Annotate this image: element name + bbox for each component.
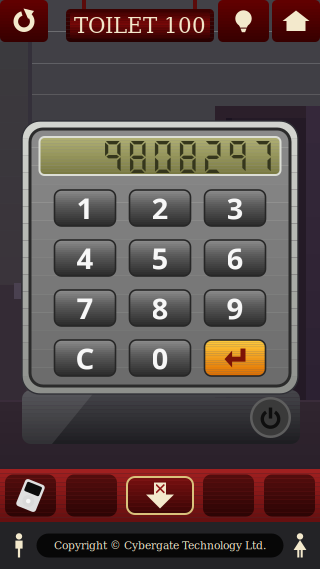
button[interactable]: Empty inventory slot — [203, 474, 254, 516]
staticText: 2 — [151, 188, 168, 227]
button[interactable]: 3 — [204, 190, 265, 226]
staticText: 9 — [226, 288, 243, 327]
button[interactable]: Empty inventory slot — [264, 474, 315, 516]
staticText: 1 — [76, 188, 93, 227]
button[interactable]: Hint — [218, 0, 269, 42]
button[interactable]: Enter — [204, 340, 265, 376]
staticText: 4 — [76, 238, 93, 277]
button[interactable]: TOILET 100 — [66, 9, 214, 42]
staticText: 6 — [226, 238, 243, 277]
button[interactable]: 5 — [129, 240, 190, 276]
button[interactable]: 7 — [54, 290, 115, 326]
staticText: 0 — [151, 338, 168, 377]
staticText: 5 — [151, 238, 168, 277]
staticText: C — [75, 338, 94, 377]
staticText: 9808297 — [100, 136, 275, 176]
staticText: TOILET 100 — [74, 13, 206, 38]
staticText: ✕ — [153, 480, 166, 498]
button[interactable]: 9 — [204, 290, 265, 326]
staticText: 7 — [76, 288, 93, 327]
button[interactable]: 4 — [54, 240, 115, 276]
staticText: 3 — [226, 188, 243, 227]
button[interactable]: Media player item — [5, 474, 56, 516]
button[interactable]: 6 — [204, 240, 265, 276]
button[interactable]: Home — [272, 0, 320, 42]
button[interactable]: Drop item — [127, 477, 193, 514]
button[interactable]: Empty inventory slot — [66, 474, 117, 516]
button[interactable]: 8 — [129, 290, 190, 326]
button[interactable]: 2 — [129, 190, 190, 226]
button[interactable]: Restart — [0, 0, 48, 42]
button[interactable]: C — [54, 340, 115, 376]
button[interactable]: 1 — [54, 190, 115, 226]
staticText: Copyright © Cybergate Technology Ltd. — [54, 539, 266, 552]
button[interactable]: 0 — [129, 340, 190, 376]
staticText: 8 — [151, 288, 168, 327]
